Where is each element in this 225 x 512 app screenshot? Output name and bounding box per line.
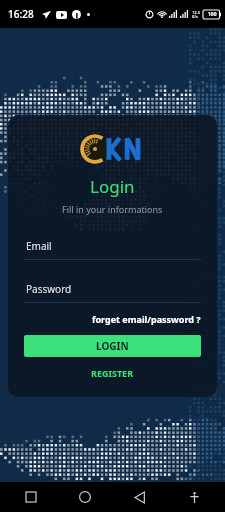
staticText: 12.5 K/s: [192, 10, 200, 19]
staticText: Login: [90, 175, 135, 198]
button[interactable]: forget email/password ?: [24, 313, 201, 325]
staticText: Fill in your informations: [62, 203, 163, 215]
button[interactable]: Accessibility: [181, 484, 207, 510]
button[interactable]: Recent apps: [18, 484, 44, 510]
button[interactable]: Password: [24, 276, 201, 303]
staticText: LOGIN: [96, 339, 129, 353]
staticText: 16:28: [8, 7, 34, 21]
staticText: 100: [208, 11, 217, 18]
staticText: forget email/password ?: [92, 313, 201, 325]
staticText: Email: [26, 239, 52, 253]
button[interactable]: LOGIN: [24, 335, 201, 357]
button[interactable]: Email: [24, 233, 201, 260]
staticText: Password: [26, 282, 72, 296]
button[interactable]: REGISTER: [24, 363, 201, 383]
button[interactable]: Back: [127, 484, 153, 510]
button[interactable]: Home: [72, 484, 98, 510]
staticText: REGISTER: [91, 367, 134, 379]
